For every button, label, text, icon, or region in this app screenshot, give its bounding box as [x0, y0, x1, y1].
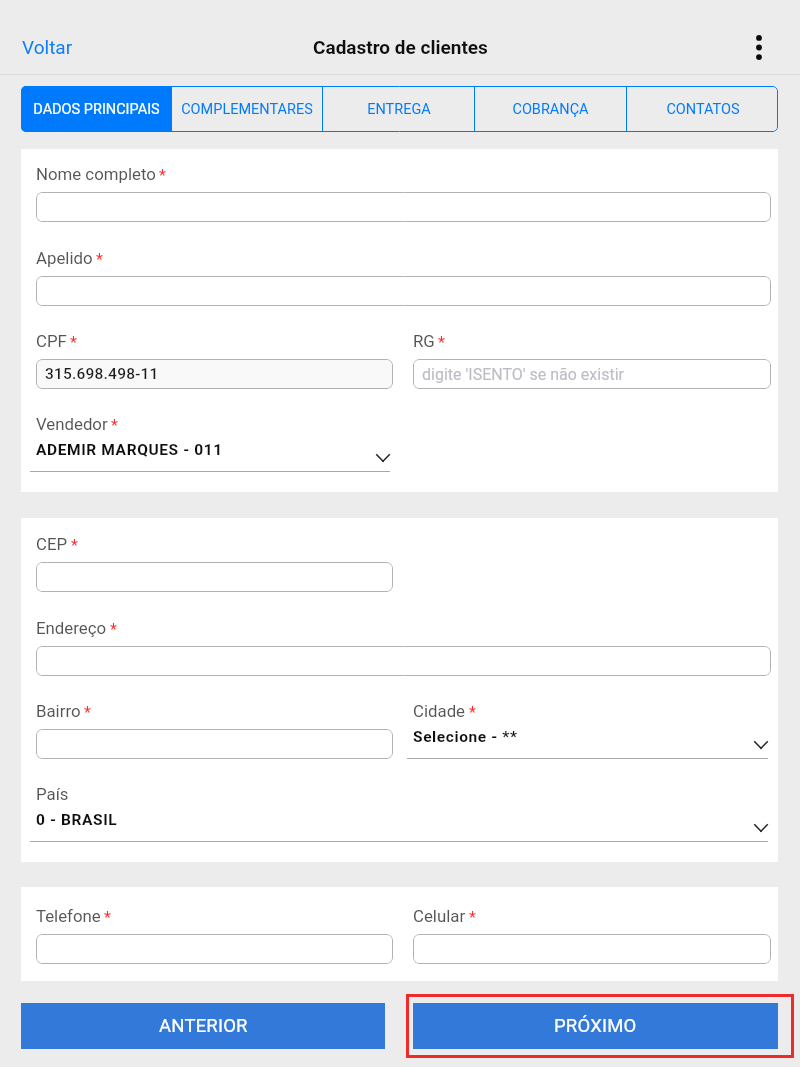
staticText: *	[469, 908, 476, 927]
staticText: Telefone	[36, 906, 101, 926]
button[interactable]	[36, 934, 393, 964]
staticText: ENTREGA	[367, 101, 431, 118]
staticText: *	[71, 536, 78, 555]
staticText: Apelido	[36, 248, 93, 268]
staticText: CEP	[36, 534, 68, 554]
staticText: ADEMIR MARQUES - 011	[36, 441, 223, 459]
staticText: COMPLEMENTARES	[181, 101, 313, 118]
staticText: ANTERIOR	[159, 1015, 248, 1037]
staticText: Cadastro de clientes	[313, 36, 488, 58]
button[interactable]	[36, 729, 393, 759]
button[interactable]	[413, 934, 771, 964]
staticText: Selecione - **	[413, 728, 518, 746]
staticText: *	[110, 620, 117, 639]
button[interactable]: COMPLEMENTARES	[172, 86, 322, 132]
staticText: Nome completo	[36, 164, 156, 184]
button[interactable]: 315.698.498-11	[36, 359, 393, 389]
staticText: Voltar	[22, 36, 73, 58]
staticText: *	[438, 333, 445, 352]
staticText: RG	[413, 331, 435, 351]
staticText: CONTATOS	[666, 101, 740, 118]
staticText: *	[104, 908, 111, 927]
staticText: *	[111, 416, 118, 435]
button[interactable]	[36, 562, 393, 592]
staticText: Endereço	[36, 618, 107, 638]
staticText: 0 - BRASIL	[36, 811, 118, 829]
staticText: *	[159, 166, 166, 185]
button[interactable]: COBRANÇA	[475, 86, 626, 132]
button[interactable]: Voltar	[0, 30, 89, 64]
staticText: digite 'ISENTO' se não existir	[422, 365, 624, 384]
staticText: DADOS PRINCIPAIS	[33, 101, 160, 118]
button[interactable]: digite 'ISENTO' se não existir	[413, 359, 771, 389]
staticText: País	[36, 784, 69, 804]
staticText: Cidade	[413, 701, 466, 721]
button[interactable]: ENTREGA	[323, 86, 474, 132]
button[interactable]: ANTERIOR	[21, 1003, 385, 1049]
button[interactable]: Selecione - **	[413, 726, 771, 759]
staticText: *	[469, 703, 476, 722]
button[interactable]: PRÓXIMO	[413, 1003, 778, 1049]
button[interactable]: 0 - BRASIL	[36, 809, 771, 842]
staticText: COBRANÇA	[512, 101, 589, 118]
staticText: *	[70, 333, 77, 352]
button[interactable]	[36, 646, 771, 676]
staticText: Celular	[413, 906, 466, 926]
button[interactable]: DADOS PRINCIPAIS	[21, 86, 171, 132]
staticText: PRÓXIMO	[554, 1015, 637, 1037]
staticText: 315.698.498-11	[45, 365, 159, 383]
staticText: Vendedor	[36, 414, 108, 434]
button[interactable]: More options	[735, 23, 783, 71]
button[interactable]: ADEMIR MARQUES - 011	[36, 439, 393, 472]
button[interactable]	[36, 192, 771, 222]
staticText: Bairro	[36, 701, 81, 721]
button[interactable]	[36, 276, 771, 306]
staticText: *	[84, 703, 91, 722]
staticText: CPF	[36, 331, 67, 351]
staticText: *	[96, 250, 103, 269]
button[interactable]: CONTATOS	[627, 86, 778, 132]
